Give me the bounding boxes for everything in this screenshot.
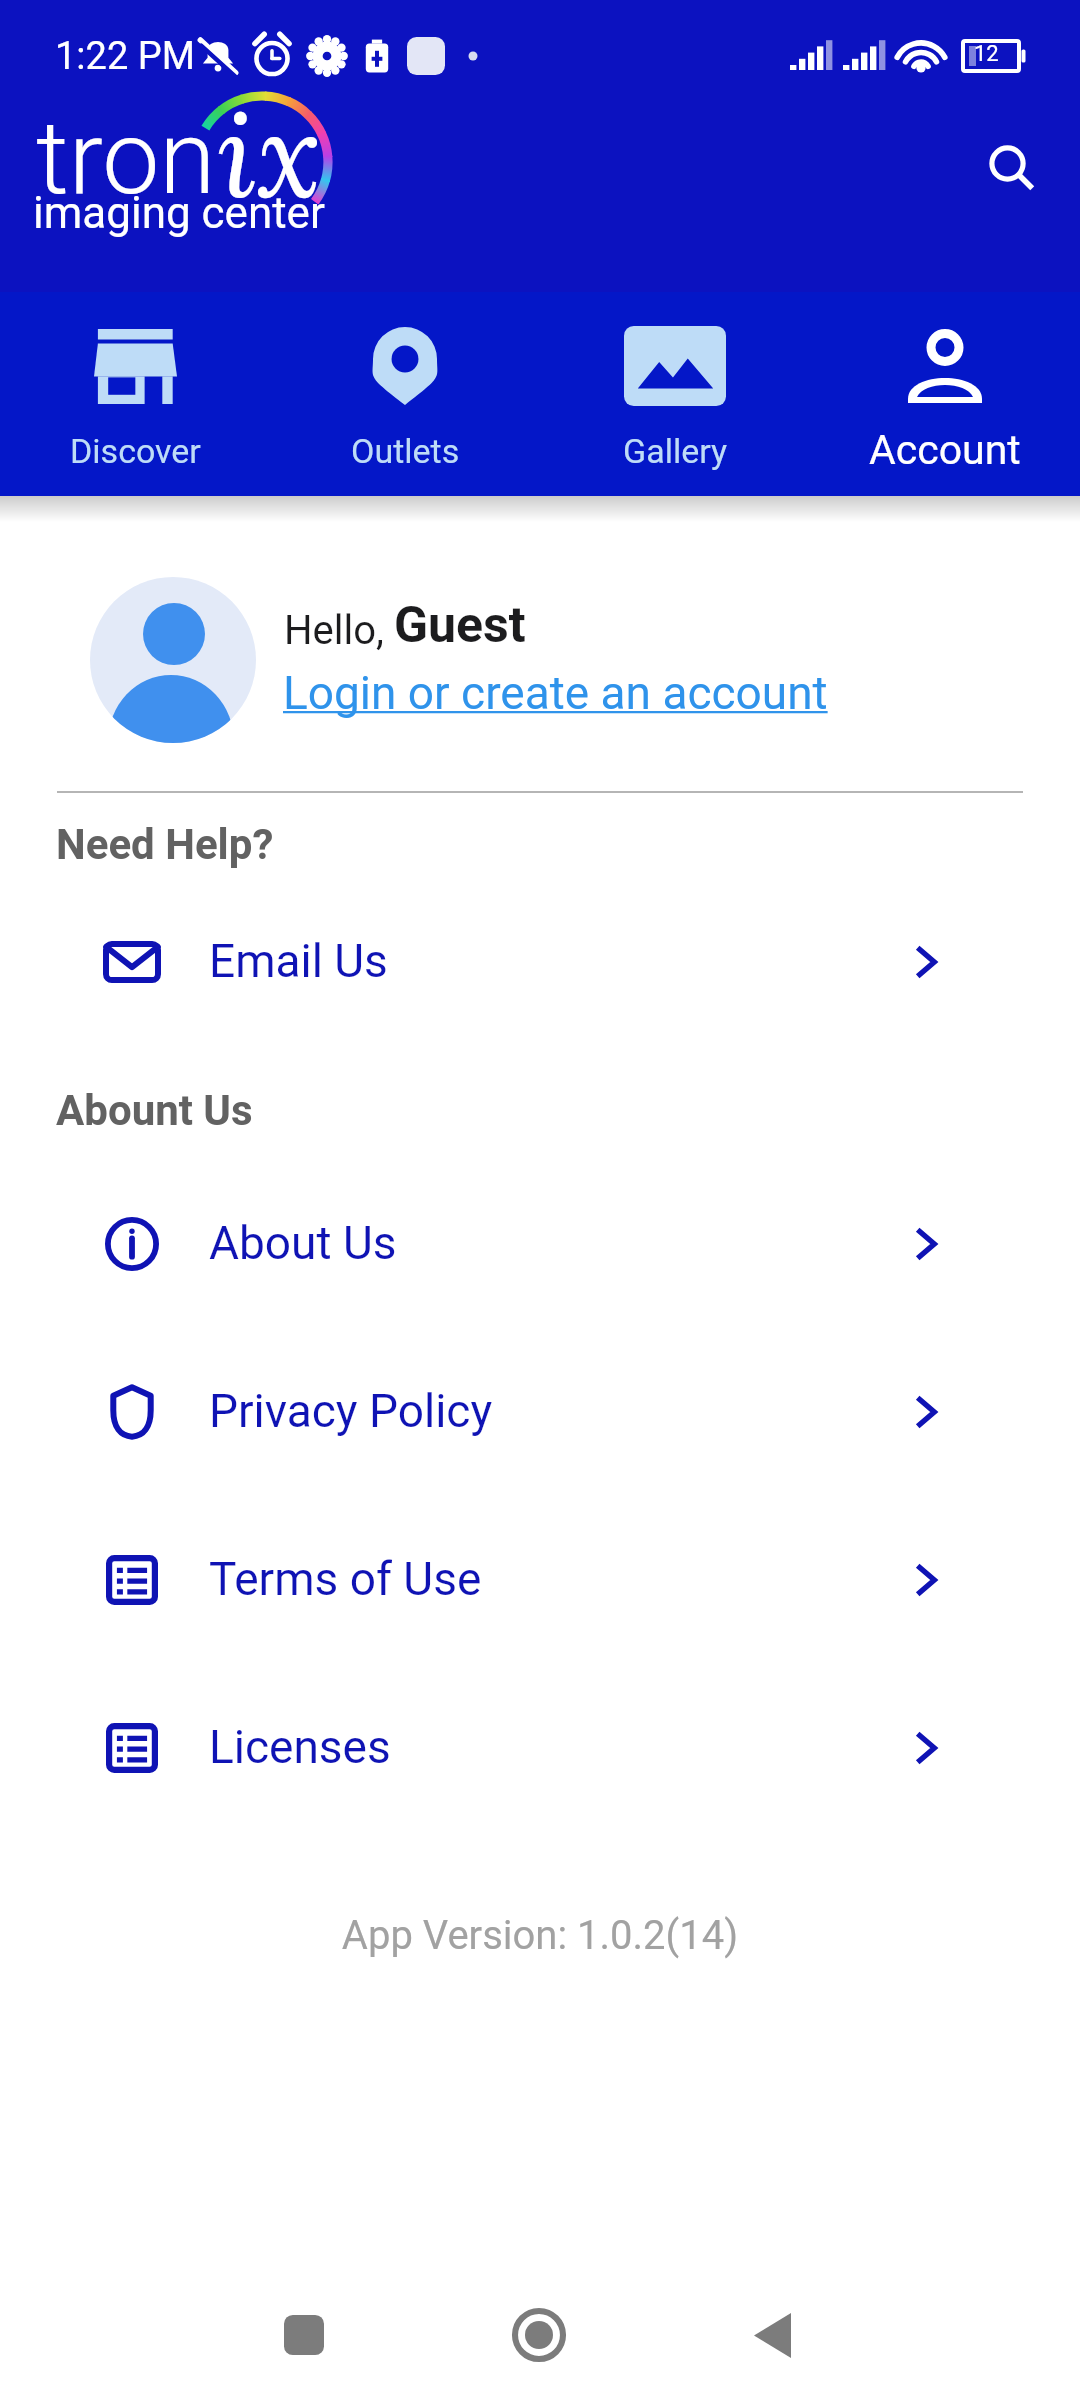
button[interactable]: Account bbox=[810, 292, 1080, 496]
button[interactable]: Privacy Policy bbox=[0, 1357, 1080, 1467]
staticText: Licenses bbox=[209, 1720, 391, 1774]
staticText: ix bbox=[218, 78, 321, 229]
button[interactable]: Email Us bbox=[0, 907, 1080, 1017]
staticText: Hello, bbox=[284, 607, 394, 654]
button[interactable]: Home bbox=[479, 2275, 599, 2395]
staticText: Outlets bbox=[351, 431, 460, 471]
button[interactable]: Gallery bbox=[540, 292, 810, 496]
button[interactable]: Search bbox=[957, 114, 1057, 214]
staticText: Guest bbox=[394, 596, 526, 655]
button[interactable]: Recent apps bbox=[244, 2275, 364, 2395]
button[interactable]: Discover bbox=[0, 292, 270, 496]
staticText: imaging center bbox=[33, 187, 325, 239]
staticText: About Us bbox=[209, 1216, 397, 1270]
staticText: Email Us bbox=[209, 934, 388, 988]
staticText: Login or create an account bbox=[283, 666, 828, 720]
staticText: Gallery bbox=[623, 431, 728, 471]
staticText: Privacy Policy bbox=[209, 1384, 493, 1438]
staticText: Abount Us bbox=[56, 1086, 253, 1135]
staticText: App Version: 1.0.2(14) bbox=[0, 1912, 1080, 1959]
button[interactable]: Licenses bbox=[0, 1693, 1080, 1803]
staticText: Need Help? bbox=[56, 820, 274, 869]
button[interactable]: Outlets bbox=[270, 292, 540, 496]
staticText: tron bbox=[36, 98, 216, 218]
button[interactable]: Profile picture bbox=[90, 577, 256, 743]
button[interactable]: Back bbox=[712, 2275, 832, 2395]
staticText: 1:22 PM bbox=[55, 34, 195, 79]
staticText: Account bbox=[869, 426, 1021, 474]
button[interactable]: Login or create an account bbox=[283, 662, 839, 720]
staticText: Discover bbox=[70, 431, 201, 471]
button[interactable]: Terms of Use bbox=[0, 1525, 1080, 1635]
staticText: Terms of Use bbox=[209, 1552, 482, 1606]
staticText: 12 bbox=[974, 41, 999, 67]
button[interactable]: About Us bbox=[0, 1189, 1080, 1299]
